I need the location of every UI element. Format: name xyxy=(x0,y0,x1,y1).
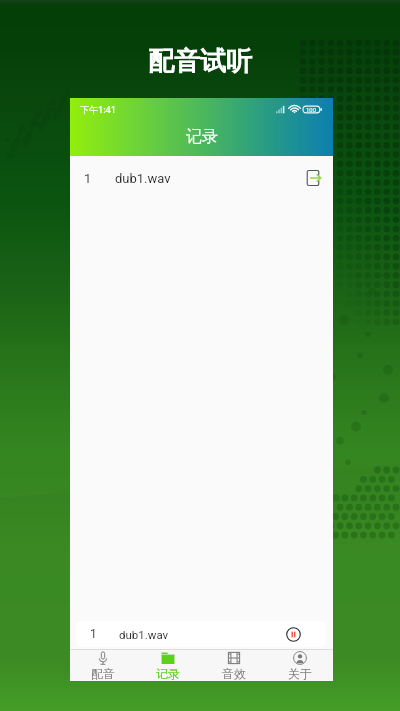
staticText: dub1.wav xyxy=(119,628,169,641)
staticText: 记录 xyxy=(156,666,180,681)
button[interactable]: 1 xyxy=(76,621,326,647)
staticText: 1 xyxy=(90,627,97,641)
button[interactable]: 关于 xyxy=(267,650,333,681)
button[interactable]: 记录 xyxy=(135,650,201,681)
staticText: 1 xyxy=(84,171,92,186)
button[interactable]: 音效 xyxy=(201,650,267,681)
staticText: 音效 xyxy=(222,666,246,681)
staticText: 配音 xyxy=(91,666,115,681)
staticText: 下午1:41 xyxy=(80,103,116,115)
button[interactable]: Export xyxy=(304,169,322,187)
button[interactable]: Pause xyxy=(286,627,301,642)
staticText: 配音试听 xyxy=(148,45,252,78)
button[interactable]: 1 xyxy=(70,156,333,200)
button[interactable]: 配音 xyxy=(70,650,135,681)
staticText: 100 xyxy=(306,106,317,113)
staticText: 关于 xyxy=(288,666,312,681)
staticText: dub1.wav xyxy=(115,171,171,186)
staticText: 记录 xyxy=(186,127,218,147)
